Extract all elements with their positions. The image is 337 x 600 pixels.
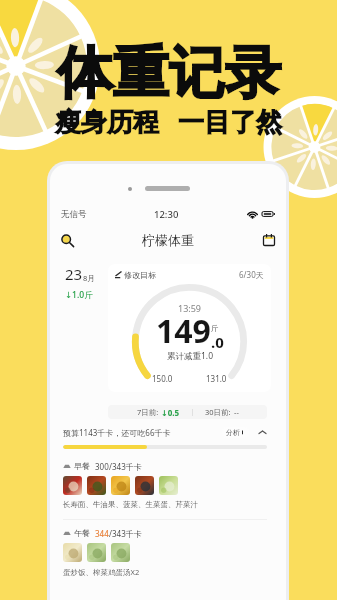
staticText: 150.0 [152, 373, 173, 384]
staticText: 长寿面、牛油果、菠菜、生菜蛋、芹菜汁 [63, 500, 198, 509]
staticText: 6/30天 [239, 269, 264, 280]
staticText: 8月 [83, 273, 95, 283]
staticText: 300 [95, 461, 109, 471]
staticText: 累计减重1.0 [167, 350, 214, 362]
button[interactable]: Search [55, 228, 79, 252]
staticText: 149 [156, 309, 211, 353]
staticText: /343千卡 [109, 528, 142, 538]
button[interactable]: 早餐 [63, 461, 267, 509]
button[interactable]: 分析 [226, 428, 245, 437]
staticText: 预算1143千卡，还可吃66千卡 [63, 427, 171, 438]
staticText: .0 [211, 332, 224, 352]
staticText: 蛋炒饭、榨菜鸡蛋汤X2 [63, 567, 140, 577]
staticText: 30日前: [205, 407, 231, 417]
button[interactable]: 7日前: [108, 405, 267, 419]
staticText: 分析 [226, 428, 240, 437]
button[interactable]: 午餐 [63, 528, 267, 577]
staticText: 无信号 [61, 209, 87, 220]
staticText: 12:30 [154, 208, 179, 221]
staticText: ↓1.0斤 [65, 289, 93, 301]
staticText: ↓0.5 [161, 407, 180, 418]
staticText: 一目了然 [178, 106, 282, 139]
staticText: 午餐 [74, 528, 90, 538]
staticText: 修改目标 [124, 270, 156, 280]
staticText: 131.0 [206, 373, 227, 384]
button[interactable]: Calendar [257, 228, 281, 252]
staticText: 23 [65, 264, 83, 284]
staticText: /343千卡 [109, 461, 142, 471]
staticText: 斤 [211, 324, 219, 333]
staticText: 344 [95, 528, 109, 538]
staticText: -- [234, 407, 239, 417]
staticText: 7日前: [137, 407, 159, 417]
staticText: 瘦身历程 [55, 106, 159, 139]
button[interactable]: 修改目标 [108, 264, 271, 392]
button[interactable]: Collapse [258, 428, 267, 437]
staticText: 柠檬体重 [142, 232, 194, 248]
staticText: 13:59 [178, 302, 202, 314]
staticText: 早餐 [74, 461, 90, 471]
staticText: 体重记录 [57, 38, 281, 109]
